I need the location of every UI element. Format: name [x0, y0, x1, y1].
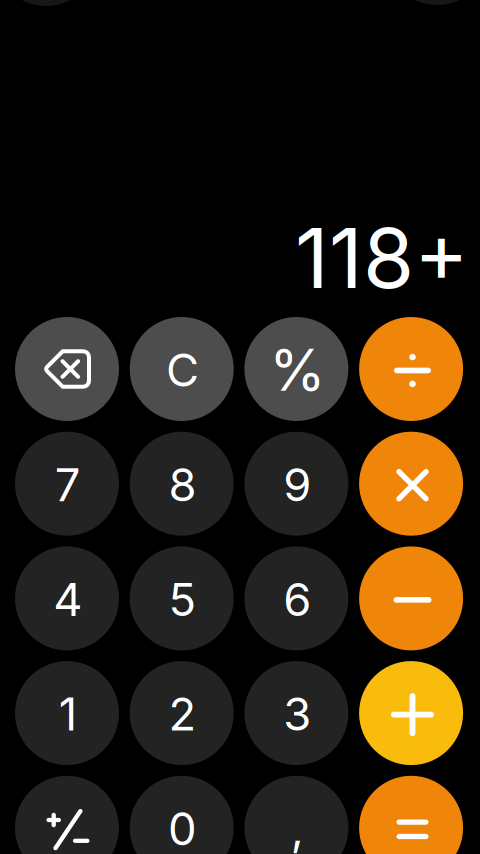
button[interactable]: 5 [130, 546, 234, 650]
button[interactable]: Delete [15, 317, 119, 421]
staticText: C [166, 343, 199, 397]
button[interactable]: 8 [130, 432, 234, 536]
staticText: 118+ [295, 208, 469, 308]
button[interactable]: 3 [244, 661, 348, 765]
button[interactable]: Equals [359, 776, 463, 854]
staticText: 6 [283, 572, 311, 627]
button[interactable]: 7 [15, 432, 119, 536]
staticText: 4 [53, 572, 82, 627]
button[interactable]: 1 [15, 661, 119, 765]
button[interactable]: Plus minus [15, 776, 119, 854]
staticText: , [291, 801, 304, 854]
staticText: 5 [168, 572, 196, 627]
button[interactable]: Add [359, 661, 463, 765]
button[interactable]: 6 [244, 546, 348, 650]
button[interactable]: C [130, 317, 234, 421]
staticText: 2 [168, 687, 196, 742]
button[interactable]: 0 [130, 776, 234, 854]
button[interactable]: 9 [244, 432, 348, 536]
staticText: 7 [55, 457, 81, 512]
button[interactable]: , [244, 776, 348, 854]
button[interactable]: Multiply [359, 432, 463, 536]
staticText: 0 [168, 801, 197, 854]
button[interactable]: Divide [359, 317, 463, 421]
staticText: 1 [59, 687, 77, 742]
staticText: % [269, 335, 325, 405]
staticText: 8 [168, 457, 196, 512]
button[interactable]: 2 [130, 661, 234, 765]
button[interactable]: Subtract [359, 546, 463, 650]
button[interactable]: 4 [15, 546, 119, 650]
button[interactable]: % [244, 317, 348, 421]
staticText: 9 [283, 457, 311, 512]
staticText: 3 [283, 687, 311, 742]
